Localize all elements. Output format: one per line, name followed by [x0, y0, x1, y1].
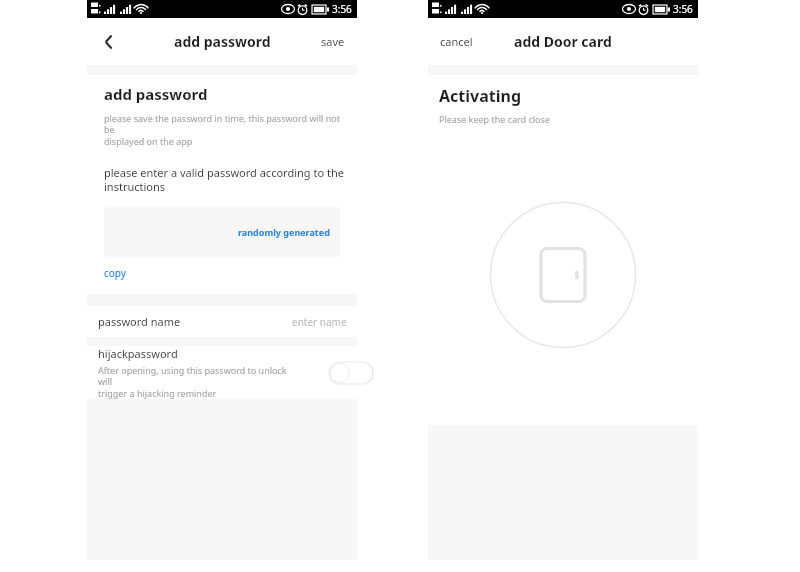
button[interactable]: randomly generated: [104, 207, 340, 257]
staticText: 3:56: [332, 2, 352, 16]
staticText: copy: [104, 266, 126, 280]
button[interactable]: randomly generated: [238, 226, 330, 238]
staticText: Activating: [439, 85, 522, 107]
staticText: password name: [98, 314, 181, 329]
button[interactable]: Toggle hijack password: [329, 362, 373, 384]
staticText: hijackpassword: [98, 346, 178, 361]
staticText: After opening, using this password to un…: [98, 364, 299, 399]
staticText: add password: [104, 84, 208, 104]
button[interactable]: save: [317, 28, 349, 55]
staticText: enter name: [292, 315, 347, 329]
staticText: Please keep the card close: [439, 113, 550, 125]
button[interactable]: copy: [104, 266, 126, 280]
staticText: 3:56: [673, 2, 693, 16]
button[interactable]: cancel: [436, 28, 477, 55]
staticText: add Door card: [514, 32, 612, 51]
staticText: please save the password in time, this p…: [104, 112, 347, 148]
staticText: randomly generated: [238, 226, 330, 238]
staticText: please enter a valid password according …: [104, 165, 344, 194]
button[interactable]: password name: [87, 306, 357, 337]
button[interactable]: hijackpassword: [87, 346, 357, 399]
staticText: save: [321, 34, 345, 49]
staticText: cancel: [440, 34, 473, 49]
button[interactable]: Back: [91, 24, 127, 60]
staticText: add password: [174, 32, 271, 51]
